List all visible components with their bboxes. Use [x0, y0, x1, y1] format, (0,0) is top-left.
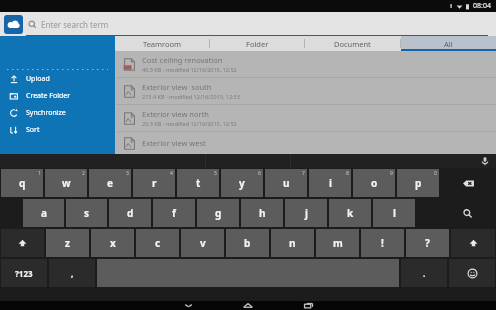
button[interactable]: s: [66, 199, 107, 227]
staticText: 7: [302, 170, 305, 177]
button[interactable]: t: [177, 169, 219, 197]
staticText: 215.4 KB - modified 12/16/2015, 12:53: [142, 93, 240, 100]
staticText: y: [239, 176, 245, 190]
button[interactable]: Recents: [291, 301, 325, 310]
button[interactable]: z: [46, 229, 89, 257]
button[interactable]: q: [1, 169, 43, 197]
button[interactable]: ?: [406, 229, 449, 257]
button[interactable]: l: [373, 199, 415, 227]
staticText: 9: [390, 170, 393, 177]
staticText: 20.3 KB - modified 12/16/2015, 12:52: [142, 120, 237, 127]
button[interactable]: Shift: [1, 229, 44, 257]
staticText: 08:04: [473, 1, 491, 11]
button[interactable]: All: [401, 36, 496, 51]
button[interactable]: Document: [305, 36, 400, 51]
staticText: 3: [126, 170, 129, 177]
staticText: f: [172, 206, 176, 220]
staticText: ?: [425, 236, 430, 250]
staticText: Folder: [246, 39, 269, 49]
staticText: t: [196, 176, 201, 190]
staticText: 2: [82, 170, 85, 177]
button[interactable]: y: [221, 169, 263, 197]
staticText: 5: [214, 170, 217, 177]
button[interactable]: Exterior view south: [117, 78, 496, 104]
staticText: j: [305, 206, 308, 220]
staticText: b: [244, 236, 251, 250]
button[interactable]: e: [89, 169, 131, 197]
button[interactable]: w: [45, 169, 87, 197]
button[interactable]: m: [316, 229, 359, 257]
staticText: .: [423, 268, 426, 279]
staticText: All: [444, 39, 453, 49]
button[interactable]: r: [133, 169, 175, 197]
staticText: Cost ceiling renovation: [142, 55, 223, 65]
staticText: 40.3 KB - modified 12/16/2015, 12:52: [142, 66, 237, 73]
button[interactable]: Upload: [0, 70, 115, 87]
button[interactable]: j: [285, 199, 327, 227]
staticText: n: [289, 236, 296, 250]
staticText: w: [62, 176, 71, 190]
button[interactable]: Create Folder: [0, 87, 115, 104]
button[interactable]: u: [265, 169, 307, 197]
staticText: z: [65, 236, 70, 250]
staticText: r: [152, 176, 157, 190]
staticText: e: [107, 176, 113, 190]
button[interactable]: ?123: [1, 259, 47, 287]
staticText: x: [110, 236, 116, 250]
button[interactable]: Synchronize: [0, 104, 115, 121]
button[interactable]: Home: [231, 301, 265, 310]
staticText: u: [283, 176, 290, 190]
button[interactable]: o: [353, 169, 395, 197]
staticText: Sort: [26, 125, 40, 135]
button[interactable]: Back: [171, 301, 205, 310]
staticText: Exterior view north: [142, 109, 209, 119]
staticText: d: [127, 206, 134, 220]
button[interactable]: .: [401, 259, 447, 287]
button[interactable]: a: [23, 199, 64, 227]
button[interactable]: Search: [440, 199, 495, 227]
button[interactable]: i: [309, 169, 351, 197]
staticText: i: [329, 176, 332, 190]
button[interactable]: Voice input: [480, 156, 490, 166]
button[interactable]: n: [271, 229, 314, 257]
staticText: c: [155, 236, 161, 250]
staticText: Create Folder: [26, 91, 71, 101]
button[interactable]: Cost ceiling renovation: [117, 51, 496, 77]
button[interactable]: Sort: [0, 121, 115, 138]
button[interactable]: Exterior view west: [117, 132, 496, 154]
button[interactable]: ,: [49, 259, 95, 287]
staticText: 0: [434, 170, 437, 177]
staticText: Synchronize: [26, 108, 66, 118]
staticText: !: [381, 236, 384, 250]
button[interactable]: Folder: [210, 36, 304, 51]
button[interactable]: Emoji: [449, 259, 495, 287]
button[interactable]: x: [91, 229, 134, 257]
button[interactable]: d: [109, 199, 151, 227]
staticText: h: [259, 206, 266, 220]
staticText: Exterior view west: [142, 138, 206, 148]
staticText: v: [200, 236, 206, 250]
button[interactable]: f: [153, 199, 195, 227]
button[interactable]: g: [197, 199, 239, 227]
button[interactable]: k: [329, 199, 371, 227]
button[interactable]: h: [241, 199, 283, 227]
staticText: Document: [334, 39, 371, 49]
staticText: m: [333, 236, 343, 250]
staticText: g: [215, 206, 222, 220]
staticText: k: [347, 206, 354, 220]
button[interactable]: Backspace: [441, 169, 495, 197]
button[interactable]: c: [136, 229, 179, 257]
button[interactable]: p: [397, 169, 439, 197]
button[interactable]: !: [361, 229, 404, 257]
button[interactable]: Exterior view north: [117, 105, 496, 131]
button[interactable]: b: [226, 229, 269, 257]
staticText: 6: [258, 170, 261, 177]
staticText: Exterior view south: [142, 82, 212, 92]
button[interactable]: App menu: [4, 15, 23, 34]
button[interactable]: Shift: [451, 229, 495, 257]
staticText: ,: [71, 268, 74, 279]
staticText: 4: [170, 170, 173, 177]
button[interactable]: v: [181, 229, 224, 257]
button[interactable]: Teamroom: [115, 36, 209, 51]
